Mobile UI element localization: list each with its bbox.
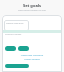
button[interactable] <box>5 46 16 51</box>
staticText: Choose a target <box>5 33 22 36</box>
staticText: Track what matters to you <box>0 9 64 12</box>
button[interactable] <box>18 46 29 51</box>
button[interactable]: Weekly step goal <box>4 20 29 31</box>
button[interactable]: a daily target? <box>2 57 62 60</box>
button[interactable] <box>5 64 29 68</box>
button[interactable]: Need help choosing <box>2 53 62 56</box>
staticText: Weekly step goal <box>6 22 24 25</box>
staticText: Set goals <box>0 3 64 8</box>
